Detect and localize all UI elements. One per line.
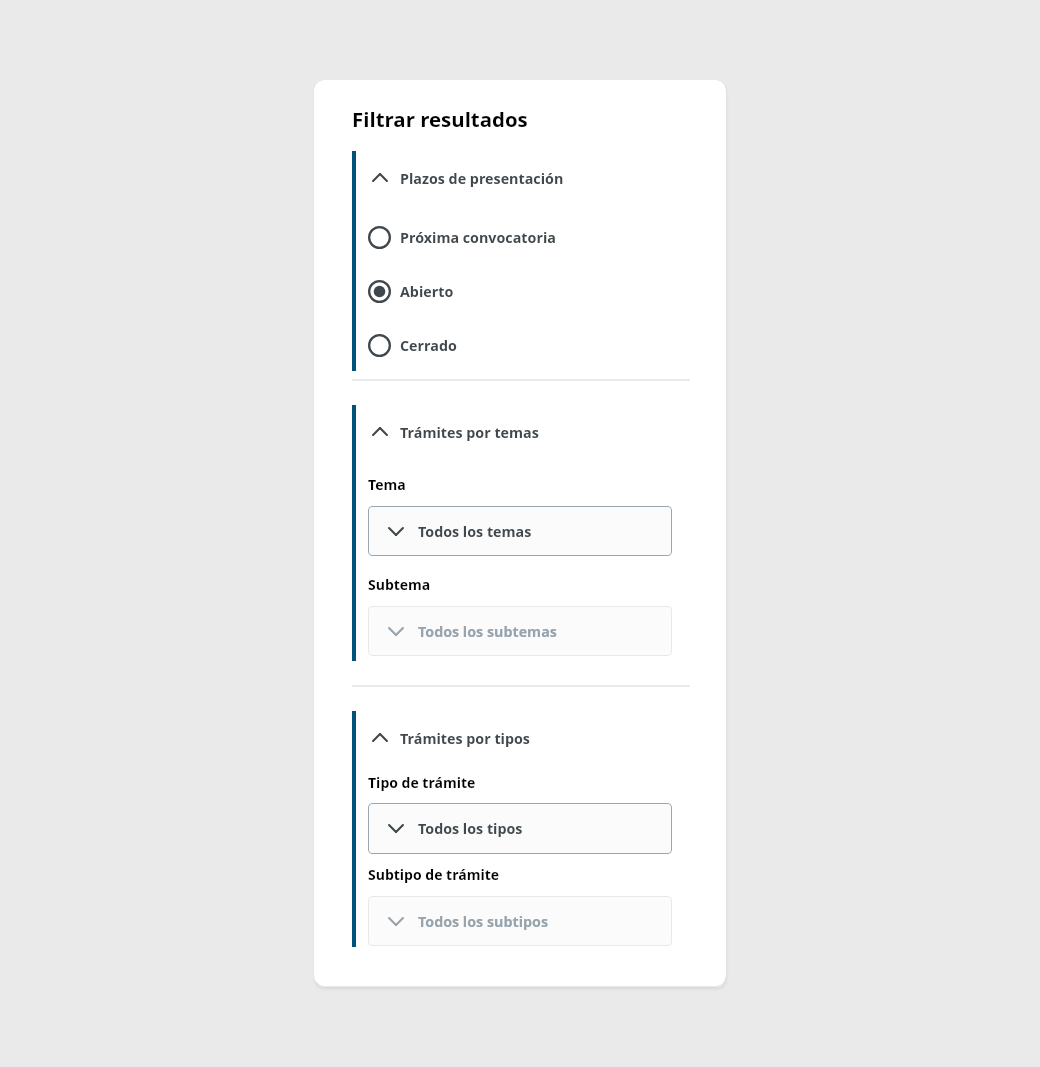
staticText: Todos los subtemas bbox=[418, 622, 557, 641]
staticText: Subtema bbox=[368, 575, 431, 594]
button[interactable]: Contraer Trámites por tipos bbox=[372, 720, 692, 756]
button[interactable]: Abierto bbox=[368, 272, 688, 310]
button[interactable]: Próxima convocatoria bbox=[368, 218, 688, 256]
staticText: Todos los temas bbox=[418, 522, 532, 541]
button[interactable]: Cerrado bbox=[368, 326, 688, 364]
button[interactable]: Todos los subtemas bbox=[368, 606, 672, 656]
staticText: Subtipo de trámite bbox=[368, 865, 500, 884]
staticText: Todos los subtipos bbox=[418, 912, 549, 931]
staticText: Filtrar resultados bbox=[352, 105, 528, 133]
staticText: Abierto bbox=[400, 282, 454, 301]
button[interactable]: Todos los temas bbox=[368, 506, 672, 556]
staticText: Cerrado bbox=[400, 336, 457, 355]
staticText: Todos los tipos bbox=[418, 819, 523, 838]
button[interactable]: Contraer Trámites por temas bbox=[372, 414, 692, 450]
staticText: Tema bbox=[368, 475, 406, 494]
button[interactable]: Contraer Plazos de presentación bbox=[372, 160, 692, 196]
staticText: Trámites por tipos bbox=[400, 729, 530, 748]
staticText: Próxima convocatoria bbox=[400, 228, 556, 247]
button[interactable]: Todos los tipos bbox=[368, 803, 672, 854]
staticText: Tipo de trámite bbox=[368, 773, 476, 792]
staticText: Trámites por temas bbox=[400, 423, 539, 442]
button[interactable]: Todos los subtipos bbox=[368, 896, 672, 946]
staticText: Plazos de presentación bbox=[400, 169, 564, 188]
